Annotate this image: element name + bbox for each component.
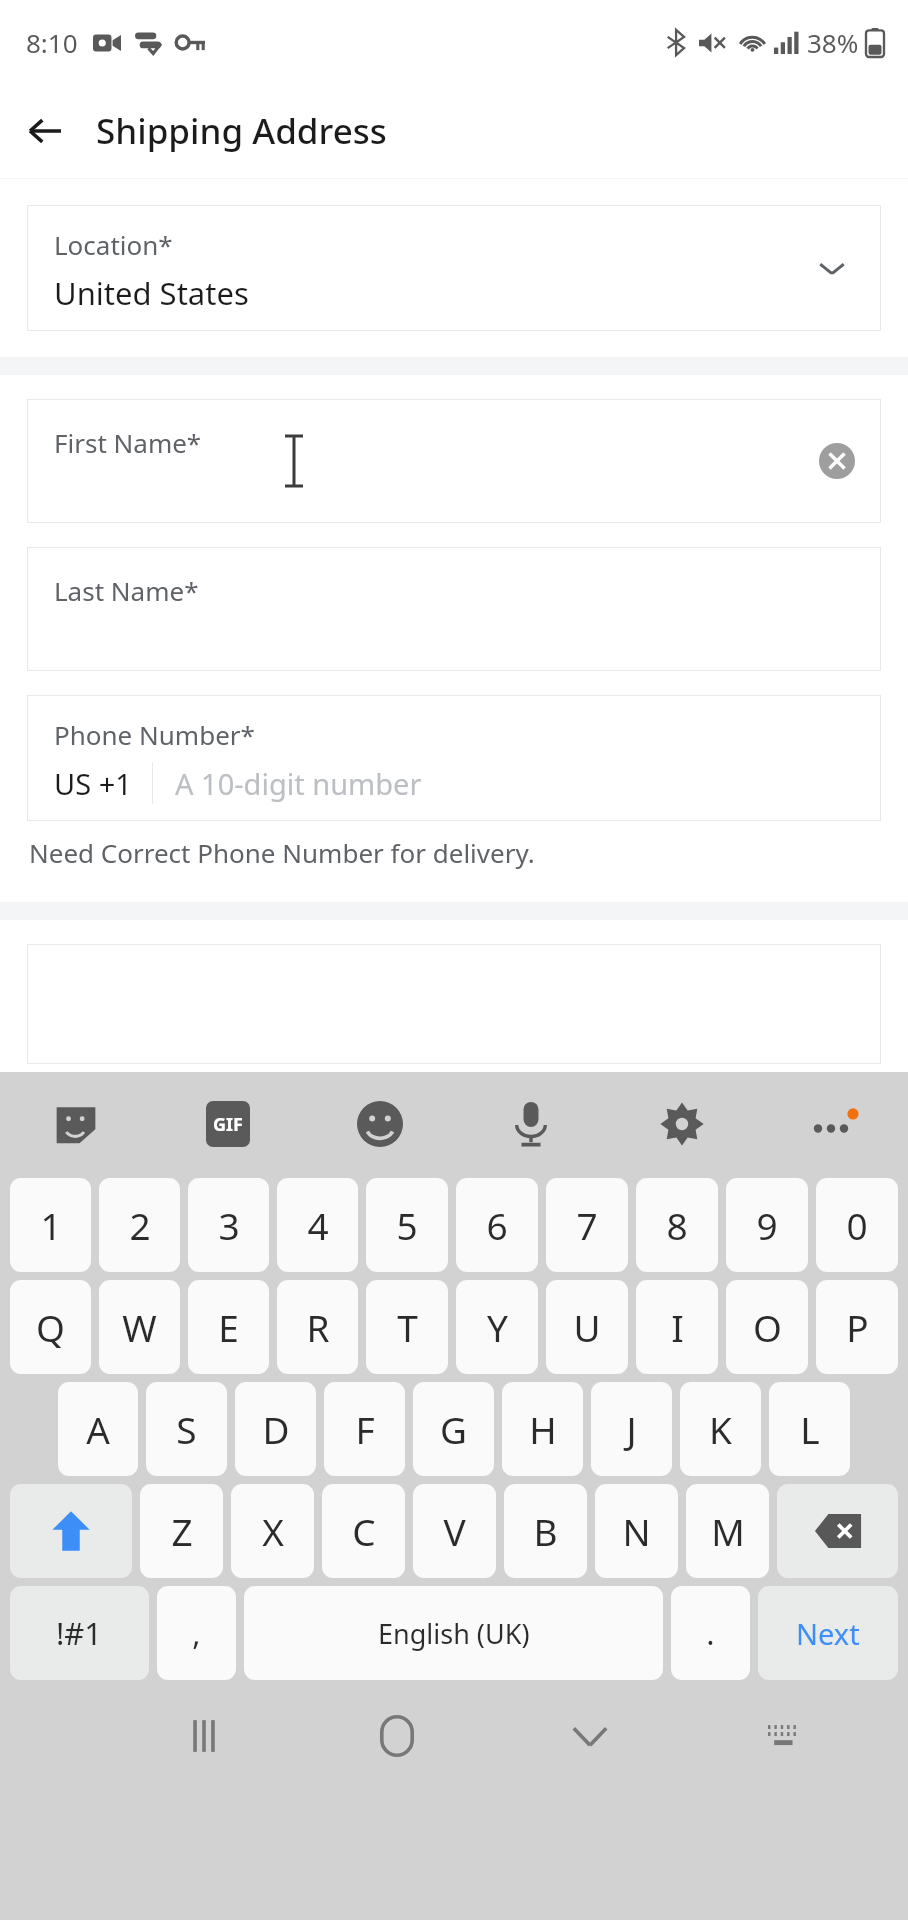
- button[interactable]: .: [671, 1586, 750, 1680]
- button[interactable]: B: [504, 1484, 587, 1578]
- button[interactable]: Recent apps: [107, 1692, 300, 1780]
- button[interactable]: ,: [157, 1586, 236, 1680]
- button[interactable]: S: [146, 1382, 227, 1476]
- button[interactable]: J: [591, 1382, 672, 1476]
- button[interactable]: Choose location: [809, 245, 855, 291]
- staticText: T: [397, 1302, 418, 1352]
- staticText: P: [846, 1302, 869, 1352]
- staticText: Q: [36, 1302, 65, 1352]
- button[interactable]: Backspace: [777, 1484, 898, 1578]
- button[interactable]: Stickers: [0, 1072, 152, 1176]
- staticText: L: [800, 1404, 820, 1454]
- button[interactable]: C: [322, 1484, 405, 1578]
- button[interactable]: First Name*: [27, 399, 881, 523]
- button[interactable]: 3: [188, 1178, 269, 1272]
- staticText: N: [622, 1506, 651, 1556]
- button[interactable]: H: [502, 1382, 583, 1476]
- staticText: 5: [396, 1200, 418, 1250]
- staticText: Next: [796, 1614, 860, 1653]
- staticText: Shipping Address: [96, 107, 387, 155]
- button[interactable]: 7: [546, 1178, 628, 1272]
- button[interactable]: Last Name*: [27, 547, 881, 671]
- staticText: D: [262, 1404, 290, 1454]
- staticText: Y: [487, 1302, 508, 1352]
- staticText: Last Name*: [54, 573, 199, 608]
- button[interactable]: G: [413, 1382, 494, 1476]
- button[interactable]: D: [235, 1382, 316, 1476]
- staticText: 1: [40, 1200, 62, 1250]
- button[interactable]: F: [324, 1382, 405, 1476]
- button[interactable]: R: [277, 1280, 358, 1374]
- staticText: !#1: [56, 1612, 103, 1654]
- button[interactable]: O: [726, 1280, 808, 1374]
- button[interactable]: 2: [99, 1178, 180, 1272]
- button[interactable]: Z: [140, 1484, 223, 1578]
- button[interactable]: Shift: [10, 1484, 132, 1578]
- staticText: 8: [666, 1200, 688, 1250]
- button[interactable]: Phone Number*: [27, 695, 881, 821]
- button[interactable]: P: [816, 1280, 898, 1374]
- staticText: I: [671, 1302, 684, 1352]
- button[interactable]: X: [231, 1484, 314, 1578]
- staticText: E: [218, 1302, 239, 1352]
- button[interactable]: 4: [277, 1178, 358, 1272]
- staticText: J: [626, 1404, 637, 1454]
- staticText: 9: [756, 1200, 778, 1250]
- staticText: F: [355, 1404, 375, 1454]
- button[interactable]: Home: [300, 1692, 493, 1780]
- button[interactable]: Keyboard settings: [606, 1072, 757, 1176]
- button[interactable]: More options: [757, 1072, 908, 1176]
- button[interactable]: W: [99, 1280, 180, 1374]
- button[interactable]: Clear first name: [815, 439, 859, 483]
- staticText: A 10-digit number: [175, 764, 422, 803]
- button[interactable]: Y: [456, 1280, 538, 1374]
- button[interactable]: Hide keyboard: [493, 1692, 686, 1780]
- button[interactable]: [27, 944, 881, 1064]
- staticText: Z: [171, 1506, 193, 1556]
- button[interactable]: K: [680, 1382, 761, 1476]
- button[interactable]: Voice input: [455, 1072, 606, 1176]
- staticText: Location*: [54, 227, 173, 262]
- staticText: United States: [54, 272, 249, 314]
- button[interactable]: Q: [10, 1280, 91, 1374]
- button[interactable]: U: [546, 1280, 628, 1374]
- button[interactable]: E: [188, 1280, 269, 1374]
- button[interactable]: 9: [726, 1178, 808, 1272]
- button[interactable]: Back: [16, 102, 74, 160]
- staticText: ,: [192, 1612, 201, 1654]
- staticText: M: [711, 1506, 745, 1556]
- button[interactable]: Location*: [27, 205, 881, 331]
- button[interactable]: !#1: [10, 1586, 149, 1680]
- button[interactable]: I: [636, 1280, 718, 1374]
- staticText: .: [706, 1612, 715, 1654]
- button[interactable]: 6: [456, 1178, 538, 1272]
- staticText: S: [176, 1404, 197, 1454]
- button[interactable]: Next: [758, 1586, 898, 1680]
- staticText: GIF: [213, 1112, 243, 1137]
- staticText: V: [443, 1506, 466, 1556]
- staticText: U: [573, 1302, 601, 1352]
- staticText: 8:10: [26, 25, 78, 60]
- button[interactable]: L: [769, 1382, 850, 1476]
- staticText: 6: [486, 1200, 508, 1250]
- button[interactable]: GIF: [152, 1072, 304, 1176]
- staticText: 38%: [807, 25, 859, 60]
- staticText: R: [306, 1302, 330, 1352]
- button[interactable]: 0: [816, 1178, 898, 1272]
- button[interactable]: M: [686, 1484, 769, 1578]
- staticText: G: [440, 1404, 467, 1454]
- button[interactable]: Change keyboard: [686, 1692, 879, 1780]
- staticText: W: [122, 1302, 157, 1352]
- button[interactable]: 8: [636, 1178, 718, 1272]
- button[interactable]: A: [58, 1382, 138, 1476]
- button[interactable]: 5: [366, 1178, 448, 1272]
- button[interactable]: V: [413, 1484, 496, 1578]
- staticText: US +1: [54, 764, 132, 803]
- button[interactable]: English (UK): [244, 1586, 663, 1680]
- staticText: H: [529, 1404, 557, 1454]
- staticText: 7: [576, 1200, 598, 1250]
- button[interactable]: Emoji: [304, 1072, 455, 1176]
- button[interactable]: T: [366, 1280, 448, 1374]
- button[interactable]: N: [595, 1484, 678, 1578]
- button[interactable]: 1: [10, 1178, 91, 1272]
